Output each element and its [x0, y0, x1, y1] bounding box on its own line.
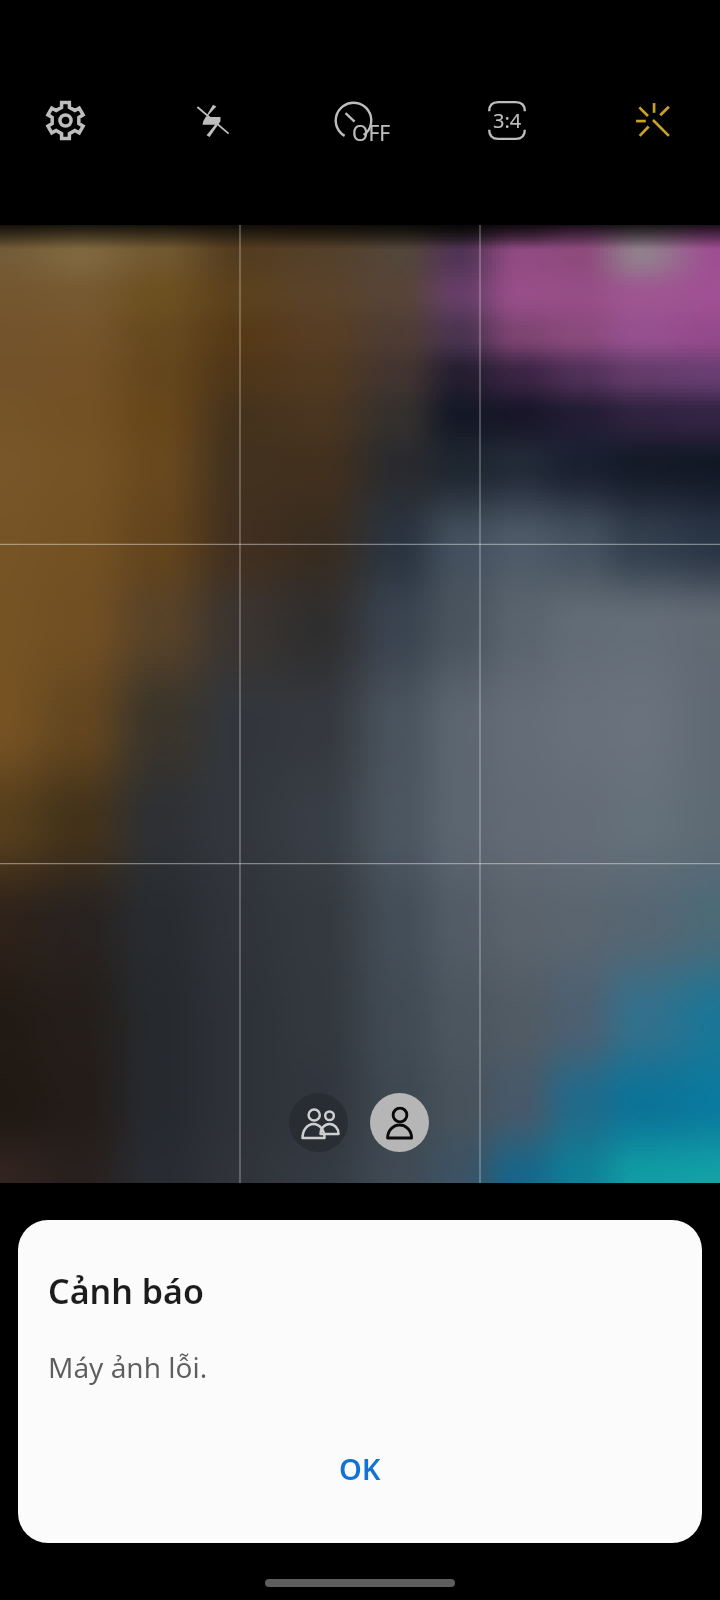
button[interactable]: Timer off	[330, 90, 394, 154]
staticText: OK	[339, 1449, 381, 1488]
button[interactable]: Single portrait	[370, 1093, 429, 1152]
button[interactable]: Settings	[33, 88, 97, 152]
button[interactable]: Aspect ratio 3 to 4	[475, 88, 539, 152]
button[interactable]: Group portrait	[289, 1093, 348, 1152]
button[interactable]: Flash off	[181, 88, 245, 152]
button[interactable]: OK	[317, 1437, 403, 1500]
staticText: Máy ảnh lỗi.	[48, 1348, 208, 1386]
button[interactable]: Beauty	[621, 88, 685, 152]
staticText: 3:4	[493, 107, 522, 134]
staticText: OFF	[352, 119, 391, 148]
staticText: Cảnh báo	[48, 1268, 204, 1314]
